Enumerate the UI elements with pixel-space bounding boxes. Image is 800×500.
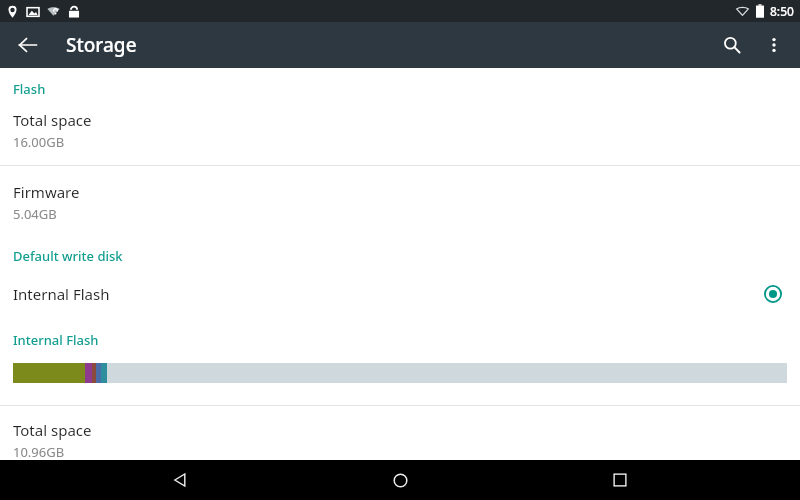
staticText: 5.04GB	[13, 205, 57, 223]
button[interactable]: Total space	[0, 110, 800, 151]
button[interactable]: Firmware	[0, 182, 800, 223]
staticText: Internal Flash	[13, 284, 110, 304]
button[interactable]: Back	[8, 25, 48, 65]
button[interactable]: Search	[710, 23, 754, 67]
staticText: Flash	[13, 80, 46, 98]
button[interactable]: More options	[754, 25, 794, 65]
staticText: Internal Flash	[13, 331, 99, 349]
button[interactable]: Back	[156, 460, 204, 500]
staticText: 8:50	[770, 3, 794, 19]
staticText: 10.96GB	[13, 443, 65, 460]
staticText: 16.00GB	[13, 133, 65, 151]
staticText: Storage	[66, 32, 137, 58]
button[interactable]: Internal Flash	[0, 275, 800, 313]
button[interactable]: Total space	[0, 420, 800, 460]
staticText: Total space	[13, 110, 92, 130]
button[interactable]: Home	[376, 460, 424, 500]
staticText: Default write disk	[13, 247, 123, 265]
button[interactable]: Recent apps	[596, 460, 644, 500]
staticText: Firmware	[13, 182, 80, 202]
staticText: Total space	[13, 420, 92, 440]
